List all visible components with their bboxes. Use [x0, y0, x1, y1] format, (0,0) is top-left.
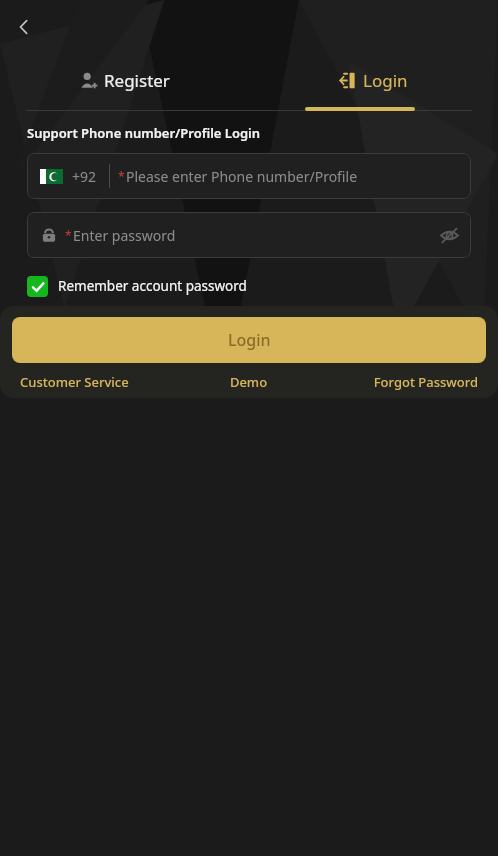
button[interactable]: Login [12, 317, 486, 363]
staticText: Forgot Password [325, 373, 478, 391]
staticText: Demo [172, 373, 325, 391]
staticText: Customer Service [20, 373, 172, 391]
staticText: Remember account password [58, 277, 247, 295]
staticText: +92 [72, 167, 97, 186]
staticText: Support Phone number/Profile Login [27, 124, 261, 142]
button[interactable]: Register [0, 54, 249, 106]
button[interactable]: Remember account password [27, 272, 247, 300]
staticText: * [118, 168, 125, 184]
staticText: Register [104, 69, 170, 92]
button[interactable]: Demo [172, 373, 325, 391]
staticText: Enter password [73, 226, 176, 245]
button[interactable]: Show password [429, 215, 469, 255]
staticText: Login [228, 329, 271, 351]
staticText: Please enter Phone number/Profile [126, 167, 358, 186]
button[interactable]: Login [249, 54, 498, 106]
staticText: * [65, 227, 72, 243]
button[interactable]: Forgot Password [325, 373, 478, 391]
button[interactable]: Back [2, 5, 46, 49]
button[interactable]: +92 [27, 153, 471, 199]
button[interactable]: * [27, 212, 471, 258]
staticText: Login [363, 69, 408, 92]
button[interactable]: Customer Service [20, 373, 172, 391]
